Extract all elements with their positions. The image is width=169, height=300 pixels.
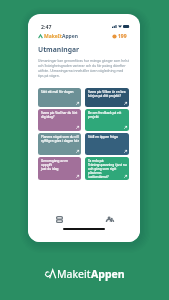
staticText: Sätt ett mål för dagen [41,90,74,94]
button[interactable]: Profile [102,213,116,226]
staticText: Planera något som du vill syftligen göra… [41,135,79,143]
staticText: Svara på: Vilken är en bra början på dit… [88,90,126,98]
staticText: Makeit [57,267,91,281]
button[interactable]: Be om feedback på ett projekt [85,109,129,131]
staticText: Utmaningar kan genomföras hur många gång… [38,58,129,78]
staticText: 199 [118,33,127,40]
button[interactable]: Sätt ett mål för dagen [38,88,81,107]
staticText: Ställ en öppen fråga [88,135,118,139]
button[interactable]: Genomgång av en uppgift just du idag [38,157,81,180]
button[interactable]: Svara på: Vilken är en bra början på dit… [85,88,129,107]
staticText: Svara på: Vad har du lärt dig idag? [41,111,78,119]
staticText: Appen [62,33,79,40]
staticText: Utmaningar [38,45,80,54]
staticText: Be om feedback på ett projekt [88,111,122,119]
staticText: Genomgång av en uppgift just du idag [41,159,79,171]
staticText: Ta reda på: Träningspassning i just nu o… [88,159,127,178]
staticText: Appen [91,267,125,281]
button[interactable]: Svara på: Vad har du lärt dig idag? [38,109,81,131]
staticText: 2:47 [41,23,52,30]
button[interactable]: Ta reda på: Träningspassning i just nu o… [85,157,129,180]
button[interactable]: Planera något som du vill syftligen göra… [38,133,81,155]
button[interactable]: Challenges [52,213,66,226]
button[interactable]: Ställ en öppen fråga [85,133,129,155]
staticText: MakeIt [44,33,62,40]
